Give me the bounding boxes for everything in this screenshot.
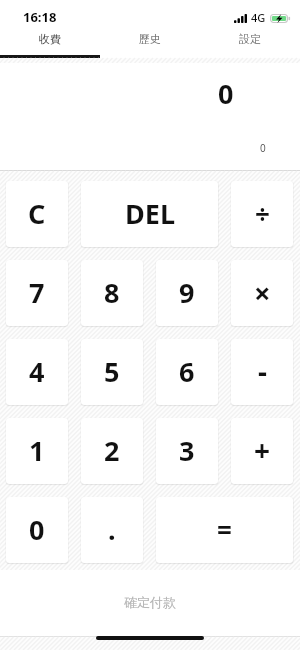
button[interactable]: ×: [231, 260, 293, 326]
staticText: 歷史: [139, 32, 161, 46]
button[interactable]: 9: [156, 260, 218, 326]
button[interactable]: 收費: [0, 28, 100, 58]
staticText: 4G: [251, 10, 266, 25]
button[interactable]: +: [231, 418, 293, 484]
button[interactable]: ÷: [231, 181, 293, 247]
staticText: 8: [104, 274, 120, 311]
button[interactable]: 4: [6, 339, 68, 405]
staticText: 收費: [39, 32, 61, 46]
staticText: 6: [179, 353, 195, 390]
staticText: 3: [179, 432, 195, 469]
staticText: 9: [179, 274, 195, 311]
staticText: 1: [29, 432, 45, 469]
button[interactable]: 2: [81, 418, 143, 484]
button[interactable]: 7: [6, 260, 68, 326]
button[interactable]: 設定: [200, 28, 300, 58]
staticText: .: [108, 511, 116, 548]
staticText: 16:18: [23, 8, 57, 26]
button[interactable]: =: [156, 497, 293, 563]
staticText: DEL: [125, 195, 175, 232]
staticText: 4: [29, 353, 45, 390]
button[interactable]: -: [231, 339, 293, 405]
staticText: ×: [254, 273, 271, 312]
button[interactable]: 6: [156, 339, 218, 405]
button[interactable]: 歷史: [100, 28, 200, 58]
button[interactable]: 5: [81, 339, 143, 405]
staticText: 7: [29, 274, 45, 311]
button[interactable]: 8: [81, 260, 143, 326]
button[interactable]: 0: [6, 497, 68, 563]
staticText: 0: [29, 511, 45, 548]
staticText: -: [258, 352, 267, 390]
staticText: +: [254, 431, 271, 469]
staticText: 設定: [239, 32, 261, 46]
staticText: 2: [104, 432, 120, 469]
button[interactable]: 1: [6, 418, 68, 484]
button[interactable]: 3: [156, 418, 218, 484]
button[interactable]: .: [81, 497, 143, 563]
button[interactable]: C: [6, 181, 68, 247]
staticText: ÷: [255, 196, 270, 231]
staticText: 確定付款: [124, 594, 176, 610]
staticText: 0: [218, 75, 234, 112]
staticText: =: [217, 512, 232, 547]
button[interactable]: DEL: [81, 181, 218, 247]
staticText: 0: [260, 141, 266, 155]
button[interactable]: 確定付款: [0, 570, 300, 634]
staticText: C: [28, 195, 46, 232]
staticText: 5: [104, 353, 120, 390]
